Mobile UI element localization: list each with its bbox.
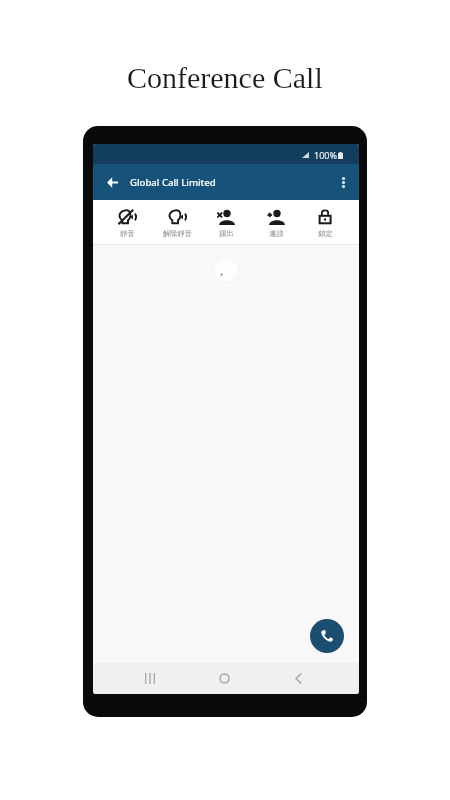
button[interactable]: 靜音 [105, 200, 149, 245]
staticText: 100% [314, 149, 337, 161]
staticText: 靜音 [120, 229, 135, 238]
button[interactable]: Back [101, 171, 124, 194]
button[interactable]: 解除靜音 [155, 200, 199, 245]
button[interactable]: Call [310, 619, 344, 653]
staticText: 解除靜音 [163, 229, 192, 238]
staticText: 鎖定 [318, 229, 333, 238]
button[interactable]: Back [261, 663, 335, 694]
button[interactable]: 踢出 [204, 200, 248, 245]
staticText: Global Call Limited [130, 176, 216, 189]
staticText: 邀請 [269, 229, 284, 238]
button[interactable]: 鎖定 [303, 200, 347, 245]
staticText: Conference Call [127, 61, 323, 94]
button[interactable]: Home [187, 663, 261, 694]
button[interactable]: 邀請 [254, 200, 298, 245]
staticText: 踢出 [219, 229, 234, 238]
button[interactable]: More options [327, 164, 359, 200]
button[interactable]: Recents [112, 663, 187, 694]
